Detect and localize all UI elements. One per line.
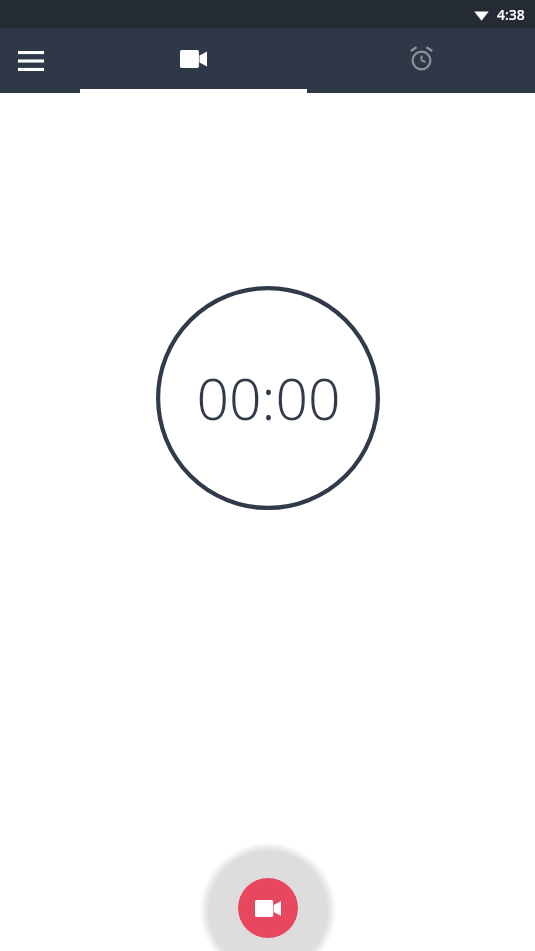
staticText: 4:38 <box>497 5 525 24</box>
button[interactable]: Alarms tab <box>307 28 535 93</box>
button[interactable]: Open navigation drawer <box>0 28 62 93</box>
button[interactable]: Start recording <box>238 878 298 938</box>
button[interactable]: Recorder tab <box>80 28 307 93</box>
other: Wi-Fi <box>474 7 489 22</box>
button[interactable]: Elapsed time 00:00 <box>156 286 380 510</box>
staticText: 00:00 <box>196 359 341 437</box>
